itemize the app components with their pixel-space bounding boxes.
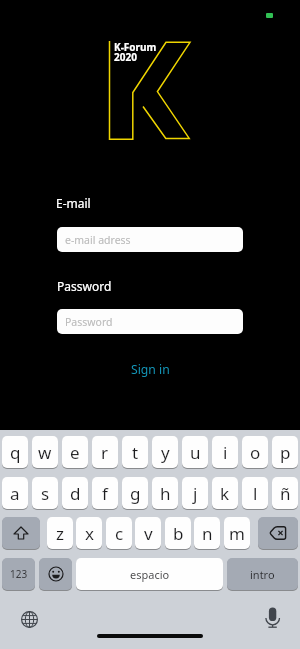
staticText: y xyxy=(161,441,170,464)
button[interactable]: k xyxy=(212,477,238,509)
staticText: 123 xyxy=(10,567,28,581)
button[interactable]: m xyxy=(224,517,250,549)
staticText: i xyxy=(223,441,228,464)
button[interactable]: e-mail adress xyxy=(57,227,243,252)
staticText: o xyxy=(250,441,261,464)
button[interactable]: p xyxy=(272,436,298,468)
button[interactable]: l xyxy=(242,477,268,509)
button[interactable]: h xyxy=(152,477,178,509)
button[interactable] xyxy=(258,517,298,549)
staticText: u xyxy=(190,441,201,464)
staticText: e-mail adress xyxy=(65,233,131,247)
staticText: r xyxy=(101,441,109,464)
button[interactable] xyxy=(39,558,72,590)
button[interactable]: z xyxy=(47,517,73,549)
button[interactable]: Password xyxy=(57,309,243,334)
staticText: x xyxy=(85,522,94,545)
button[interactable]: n xyxy=(194,517,220,549)
button[interactable]: r xyxy=(92,436,118,468)
button[interactable]: f xyxy=(92,477,118,509)
staticText: Sign in xyxy=(131,361,170,378)
button[interactable]: i xyxy=(212,436,238,468)
staticText: q xyxy=(10,441,21,464)
button[interactable]: y xyxy=(152,436,178,468)
button[interactable]: t xyxy=(122,436,148,468)
staticText: Password xyxy=(57,278,112,294)
button[interactable] xyxy=(21,611,38,628)
staticText: h xyxy=(160,482,171,505)
staticText: f xyxy=(102,482,108,505)
button[interactable]: 123 xyxy=(2,558,35,590)
button[interactable]: g xyxy=(122,477,148,509)
staticText: k xyxy=(220,482,230,505)
staticText: s xyxy=(41,482,50,505)
staticText: c xyxy=(115,522,124,545)
staticText: j xyxy=(193,482,198,505)
staticText: espacio xyxy=(130,567,170,582)
button[interactable]: Sign in xyxy=(131,361,170,378)
button[interactable]: a xyxy=(2,477,28,509)
button[interactable]: x xyxy=(76,517,102,549)
button[interactable]: c xyxy=(106,517,132,549)
staticText: l xyxy=(253,482,258,505)
staticText: b xyxy=(173,522,184,545)
staticText: d xyxy=(70,482,81,505)
staticText: a xyxy=(10,482,20,505)
staticText: Password xyxy=(65,315,113,329)
staticText: m xyxy=(229,522,245,545)
staticText: n xyxy=(202,522,213,545)
button[interactable] xyxy=(265,607,280,628)
staticText: E-mail xyxy=(56,195,91,211)
button[interactable]: espacio xyxy=(76,558,223,590)
button[interactable]: intro xyxy=(227,558,298,590)
staticText: 2020 xyxy=(114,50,137,64)
button[interactable]: w xyxy=(32,436,58,468)
staticText: K-Forum xyxy=(114,40,157,54)
button[interactable]: b xyxy=(165,517,191,549)
staticText: t xyxy=(132,441,139,464)
button[interactable]: u xyxy=(182,436,208,468)
staticText: w xyxy=(38,441,52,464)
button[interactable]: d xyxy=(62,477,88,509)
button[interactable]: s xyxy=(32,477,58,509)
button[interactable]: v xyxy=(135,517,161,549)
staticText: p xyxy=(280,441,291,464)
staticText: v xyxy=(144,522,153,545)
staticText: e xyxy=(70,441,80,464)
staticText: z xyxy=(56,522,64,545)
staticText: ñ xyxy=(280,482,291,505)
button[interactable]: o xyxy=(242,436,268,468)
staticText: intro xyxy=(250,567,275,582)
staticText: g xyxy=(130,482,141,505)
button[interactable]: q xyxy=(2,436,28,468)
button[interactable]: e xyxy=(62,436,88,468)
button[interactable]: ñ xyxy=(272,477,298,509)
button[interactable] xyxy=(2,517,40,549)
button[interactable]: j xyxy=(182,477,208,509)
